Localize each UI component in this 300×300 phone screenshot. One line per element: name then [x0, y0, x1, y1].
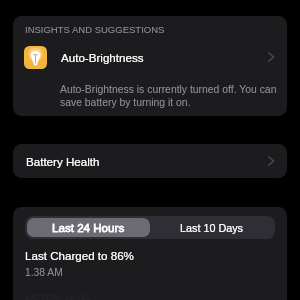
other: Open — [268, 156, 274, 166]
button[interactable]: Last 24 Hours — [27, 218, 150, 237]
button[interactable]: Last 10 Days — [150, 218, 273, 237]
staticText: Last 10 Days — [180, 222, 244, 234]
staticText: Last Charged to 86% — [25, 249, 134, 262]
staticText: Auto-Brightness — [61, 51, 144, 64]
button[interactable]: Battery Health — [13, 144, 287, 178]
staticText: Last 24 Hours — [52, 221, 125, 234]
staticText: Battery Health — [26, 155, 100, 168]
other: Open — [268, 52, 274, 62]
staticText: Auto-Brightness is currently turned off.… — [60, 84, 277, 108]
staticText: BATTERY LEVEL — [25, 293, 92, 300]
button[interactable]: Auto-Brightness — [13, 45, 287, 69]
staticText: 1.38 AM — [25, 267, 63, 279]
staticText: INSIGHTS AND SUGGESTIONS — [25, 24, 165, 35]
